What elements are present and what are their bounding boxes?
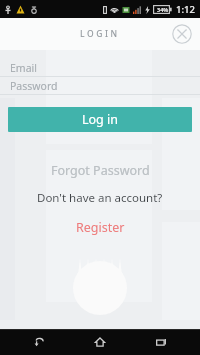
staticText: LOGIN (80, 28, 120, 40)
button[interactable]: Back (17, 329, 61, 355)
staticText: Register (76, 219, 125, 235)
button[interactable]: Close (170, 22, 194, 46)
staticText: 34% (157, 6, 169, 13)
button[interactable]: Log in (8, 107, 192, 132)
staticText: Password (10, 79, 58, 93)
button[interactable]: Recents (139, 329, 183, 355)
staticText: Email (10, 61, 37, 75)
staticText: 1:12 (176, 3, 195, 16)
button[interactable]: Register (0, 219, 200, 235)
staticText: Forgot Password (51, 162, 150, 178)
button[interactable]: Password (0, 77, 200, 95)
staticText: Log in (82, 111, 119, 128)
button[interactable]: Forgot Password (0, 162, 200, 178)
button[interactable]: Email (0, 59, 200, 77)
button[interactable]: Home (78, 329, 122, 355)
staticText: Don't have an account? (37, 190, 163, 206)
